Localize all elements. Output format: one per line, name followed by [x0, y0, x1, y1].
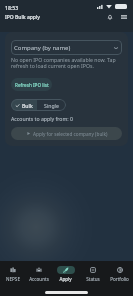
- button[interactable]: Bulk: [11, 99, 37, 111]
- staticText: 18:53: [5, 4, 19, 11]
- staticText: Accounts to apply from: 0: [11, 115, 74, 122]
- button[interactable]: Notifications: [102, 9, 117, 24]
- staticText: Single: [44, 102, 59, 109]
- button[interactable]: NEPSE: [0, 261, 26, 287]
- staticText: Bulk: [22, 102, 33, 109]
- staticText: Status: [86, 276, 100, 282]
- button[interactable]: Apply for selected company (bulk): [11, 127, 122, 140]
- button[interactable]: Single: [37, 99, 66, 111]
- staticText: No open IPO companies available now. Tap…: [11, 56, 116, 69]
- staticText: Apply: [59, 276, 72, 282]
- staticText: NEPSE: [6, 276, 20, 282]
- staticText: Apply for selected company (bulk): [33, 131, 108, 137]
- button[interactable]: Status: [79, 261, 106, 287]
- button[interactable]: Portfolio: [106, 261, 133, 287]
- staticText: Company (by name): [14, 44, 71, 52]
- staticText: Portfolio: [110, 276, 129, 282]
- button[interactable]: Apply: [52, 261, 79, 287]
- button[interactable]: Company (by name): [11, 40, 122, 55]
- button[interactable]: Accounts: [26, 261, 52, 287]
- staticText: Refresh IPO list: [15, 82, 49, 88]
- staticText: IPO Bulk apply: [5, 14, 40, 21]
- button[interactable]: Menu: [116, 9, 131, 24]
- button[interactable]: Refresh IPO list: [11, 78, 52, 91]
- staticText: Accounts: [29, 276, 49, 282]
